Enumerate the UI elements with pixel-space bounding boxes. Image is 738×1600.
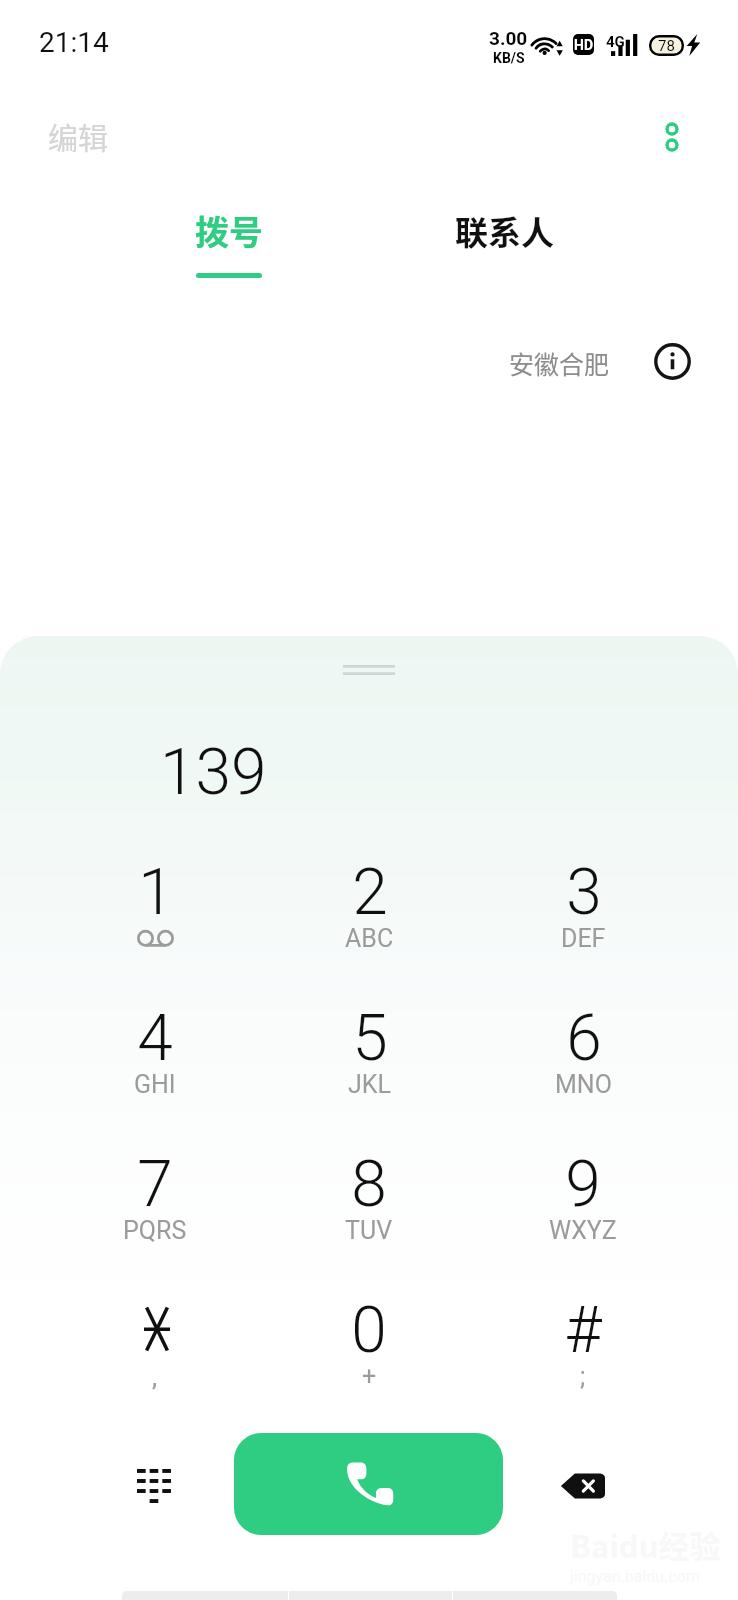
button[interactable]: 6: [476, 986, 690, 1132]
staticText: 3: [566, 855, 602, 930]
button[interactable]: 2: [262, 840, 476, 986]
button[interactable]: ,: [48, 1278, 262, 1424]
staticText: Baidu经验: [570, 1522, 721, 1567]
staticText: 编辑: [48, 114, 108, 157]
staticText: 6: [566, 1001, 602, 1076]
staticText: +: [362, 1362, 377, 1391]
staticText: ABC: [345, 924, 394, 953]
staticText: 8: [351, 1147, 387, 1222]
button[interactable]: Hide keypad: [119, 1451, 189, 1521]
button[interactable]: Backspace: [547, 1451, 617, 1521]
staticText: TUV: [345, 1216, 393, 1245]
button[interactable]: 4: [48, 986, 262, 1132]
staticText: 1: [138, 855, 174, 930]
staticText: 0: [351, 1293, 387, 1368]
staticText: 139: [160, 735, 267, 810]
staticText: ;: [580, 1362, 586, 1391]
button[interactable]: 联系人: [437, 199, 572, 263]
staticText: 4G: [606, 33, 625, 51]
staticText: 2: [352, 855, 388, 930]
staticText: #: [564, 1293, 602, 1368]
staticText: 7: [137, 1147, 173, 1222]
staticText: HD: [574, 37, 593, 53]
button[interactable]: Info: [645, 334, 700, 389]
button[interactable]: 编辑: [24, 106, 132, 165]
button[interactable]: 拨号: [177, 198, 281, 286]
staticText: 9: [565, 1147, 601, 1222]
staticText: 5: [352, 1001, 388, 1076]
staticText: 3.00: [489, 27, 528, 49]
button[interactable]: 3: [476, 840, 690, 986]
button[interactable]: 9: [476, 1132, 690, 1278]
staticText: PQRS: [123, 1216, 187, 1245]
staticText: DEF: [561, 924, 606, 953]
staticText: 拨号: [195, 206, 263, 255]
button[interactable]: 5: [262, 986, 476, 1132]
staticText: MNO: [555, 1070, 612, 1099]
staticText: GHI: [134, 1070, 176, 1099]
staticText: KB/S: [493, 50, 525, 66]
staticText: 联系人: [455, 207, 554, 255]
staticText: 4: [137, 1001, 173, 1076]
button[interactable]: 8: [262, 1132, 476, 1278]
button[interactable]: Call: [234, 1433, 503, 1535]
button[interactable]: More options: [642, 107, 702, 167]
staticText: ,: [152, 1362, 158, 1392]
button[interactable]: 7: [48, 1132, 262, 1278]
button[interactable]: 1: [48, 840, 262, 986]
staticText: 21:14: [39, 26, 109, 59]
staticText: WXYZ: [549, 1216, 617, 1245]
button[interactable]: 0: [262, 1278, 476, 1424]
staticText: 78: [658, 37, 675, 55]
staticText: 安徽合肥: [509, 345, 610, 381]
staticText: JKL: [348, 1070, 391, 1099]
button[interactable]: #: [476, 1278, 690, 1424]
